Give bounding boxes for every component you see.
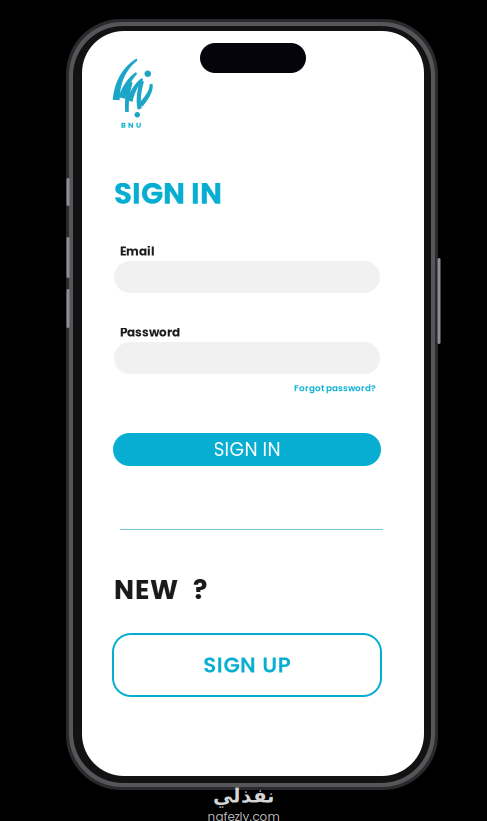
staticText: SIGN IN [213,436,280,462]
button[interactable]: Forgot password? [294,382,376,394]
staticText: NEW ? [114,571,207,608]
button[interactable]: SIGN UP [113,634,381,696]
staticText: Password [120,324,180,341]
staticText: SIGN IN [114,173,222,214]
staticText: Email [120,243,155,260]
staticText: SIGN UP [203,650,291,680]
staticText: نفذلي [212,784,274,807]
staticText: nafezly.com [207,808,279,821]
staticText: B N U [121,120,141,130]
button[interactable]: SIGN IN [113,433,381,466]
staticText: Forgot password? [294,382,376,394]
